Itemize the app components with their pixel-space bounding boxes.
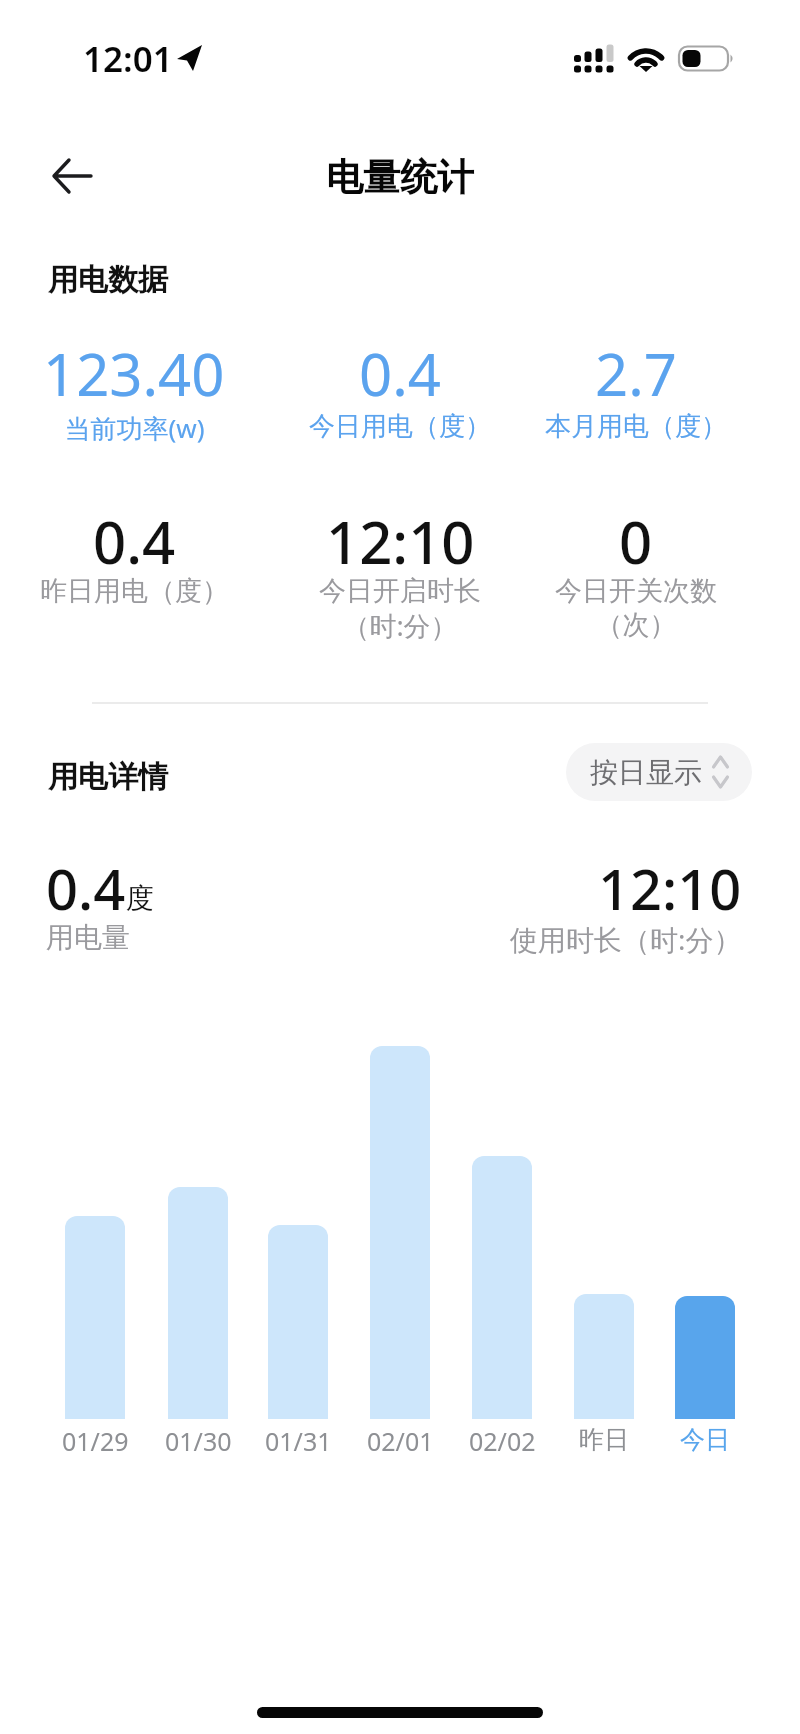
staticText: 0.4 <box>359 334 441 413</box>
staticText: 0 <box>619 502 653 581</box>
staticText: 今日用电（度） <box>309 410 491 443</box>
staticText: 当前功率(w) <box>64 410 205 446</box>
staticText: 用电量 <box>46 920 130 955</box>
staticText: 今日 <box>680 1424 730 1455</box>
staticText: 0.4 <box>93 502 176 581</box>
staticText: 12:10 <box>326 502 475 581</box>
staticText: 本月用电（度） <box>545 410 727 443</box>
staticText: 用电数据 <box>48 261 168 299</box>
staticText: 电量统计 <box>326 154 474 201</box>
staticText: 今日开启时长 （时:分） <box>319 574 481 644</box>
staticText: 01/31 <box>265 1424 332 1458</box>
button[interactable]: 按日显示 <box>566 743 752 801</box>
staticText: 02/01 <box>367 1424 434 1458</box>
staticText: 用电详情 <box>48 758 168 796</box>
staticText: 12:10 <box>598 850 742 926</box>
staticText: 度 <box>126 881 154 916</box>
staticText: 123.40 <box>43 334 225 413</box>
staticText: 01/29 <box>62 1424 129 1458</box>
button[interactable] <box>40 144 104 208</box>
staticText: 12:01 <box>83 35 173 83</box>
staticText: 2.7 <box>595 334 677 413</box>
staticText: 01/30 <box>165 1424 232 1458</box>
staticText: 今日开关次数 （次） <box>555 574 717 642</box>
staticText: 02/02 <box>469 1424 536 1458</box>
staticText: 按日显示 <box>590 755 702 790</box>
staticText: 昨日 <box>579 1424 629 1455</box>
staticText: 0.4 <box>46 850 126 926</box>
staticText: 使用时长（时:分） <box>510 920 742 958</box>
staticText: 昨日用电（度） <box>40 574 229 608</box>
